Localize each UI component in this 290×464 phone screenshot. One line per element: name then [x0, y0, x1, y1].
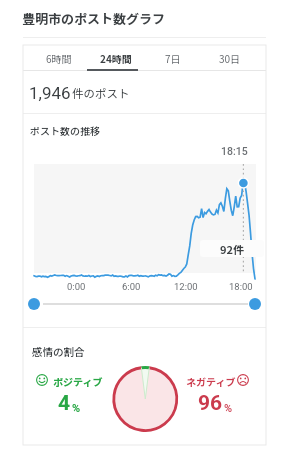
button[interactable]: Range end — [249, 298, 261, 310]
staticText: ポジティブ — [53, 374, 103, 388]
staticText: % — [224, 402, 233, 415]
staticText: 豊明市のポスト数グラフ — [22, 9, 166, 28]
staticText: 1,946 — [29, 83, 71, 103]
staticText: ポスト数の推移 — [30, 123, 100, 137]
staticText: 12:00 — [174, 281, 198, 292]
staticText: 感情の割合 — [32, 344, 85, 359]
staticText: 件のポスト — [72, 85, 130, 102]
staticText: 18:15 — [221, 145, 248, 157]
button[interactable]: Range start — [28, 298, 40, 310]
button[interactable]: 92件 — [200, 240, 264, 257]
staticText: 96 — [198, 391, 223, 416]
staticText: 92件 — [220, 241, 244, 257]
staticText: ネガティブ — [186, 374, 236, 388]
staticText: 24時間 — [100, 51, 132, 65]
staticText: 6:00 — [122, 281, 141, 292]
staticText: 6時間 — [46, 51, 72, 65]
staticText: 4 — [58, 391, 71, 416]
button[interactable]: 6時間 — [31, 45, 87, 71]
button[interactable]: 30日 — [201, 45, 258, 71]
staticText: % — [72, 402, 81, 415]
staticText: 0:00 — [67, 281, 86, 292]
button[interactable]: 24時間 — [87, 45, 144, 71]
staticText: 18:00 — [229, 281, 253, 292]
button[interactable]: 7日 — [144, 45, 201, 71]
staticText: 30日 — [219, 51, 241, 65]
staticText: 7日 — [165, 51, 181, 65]
